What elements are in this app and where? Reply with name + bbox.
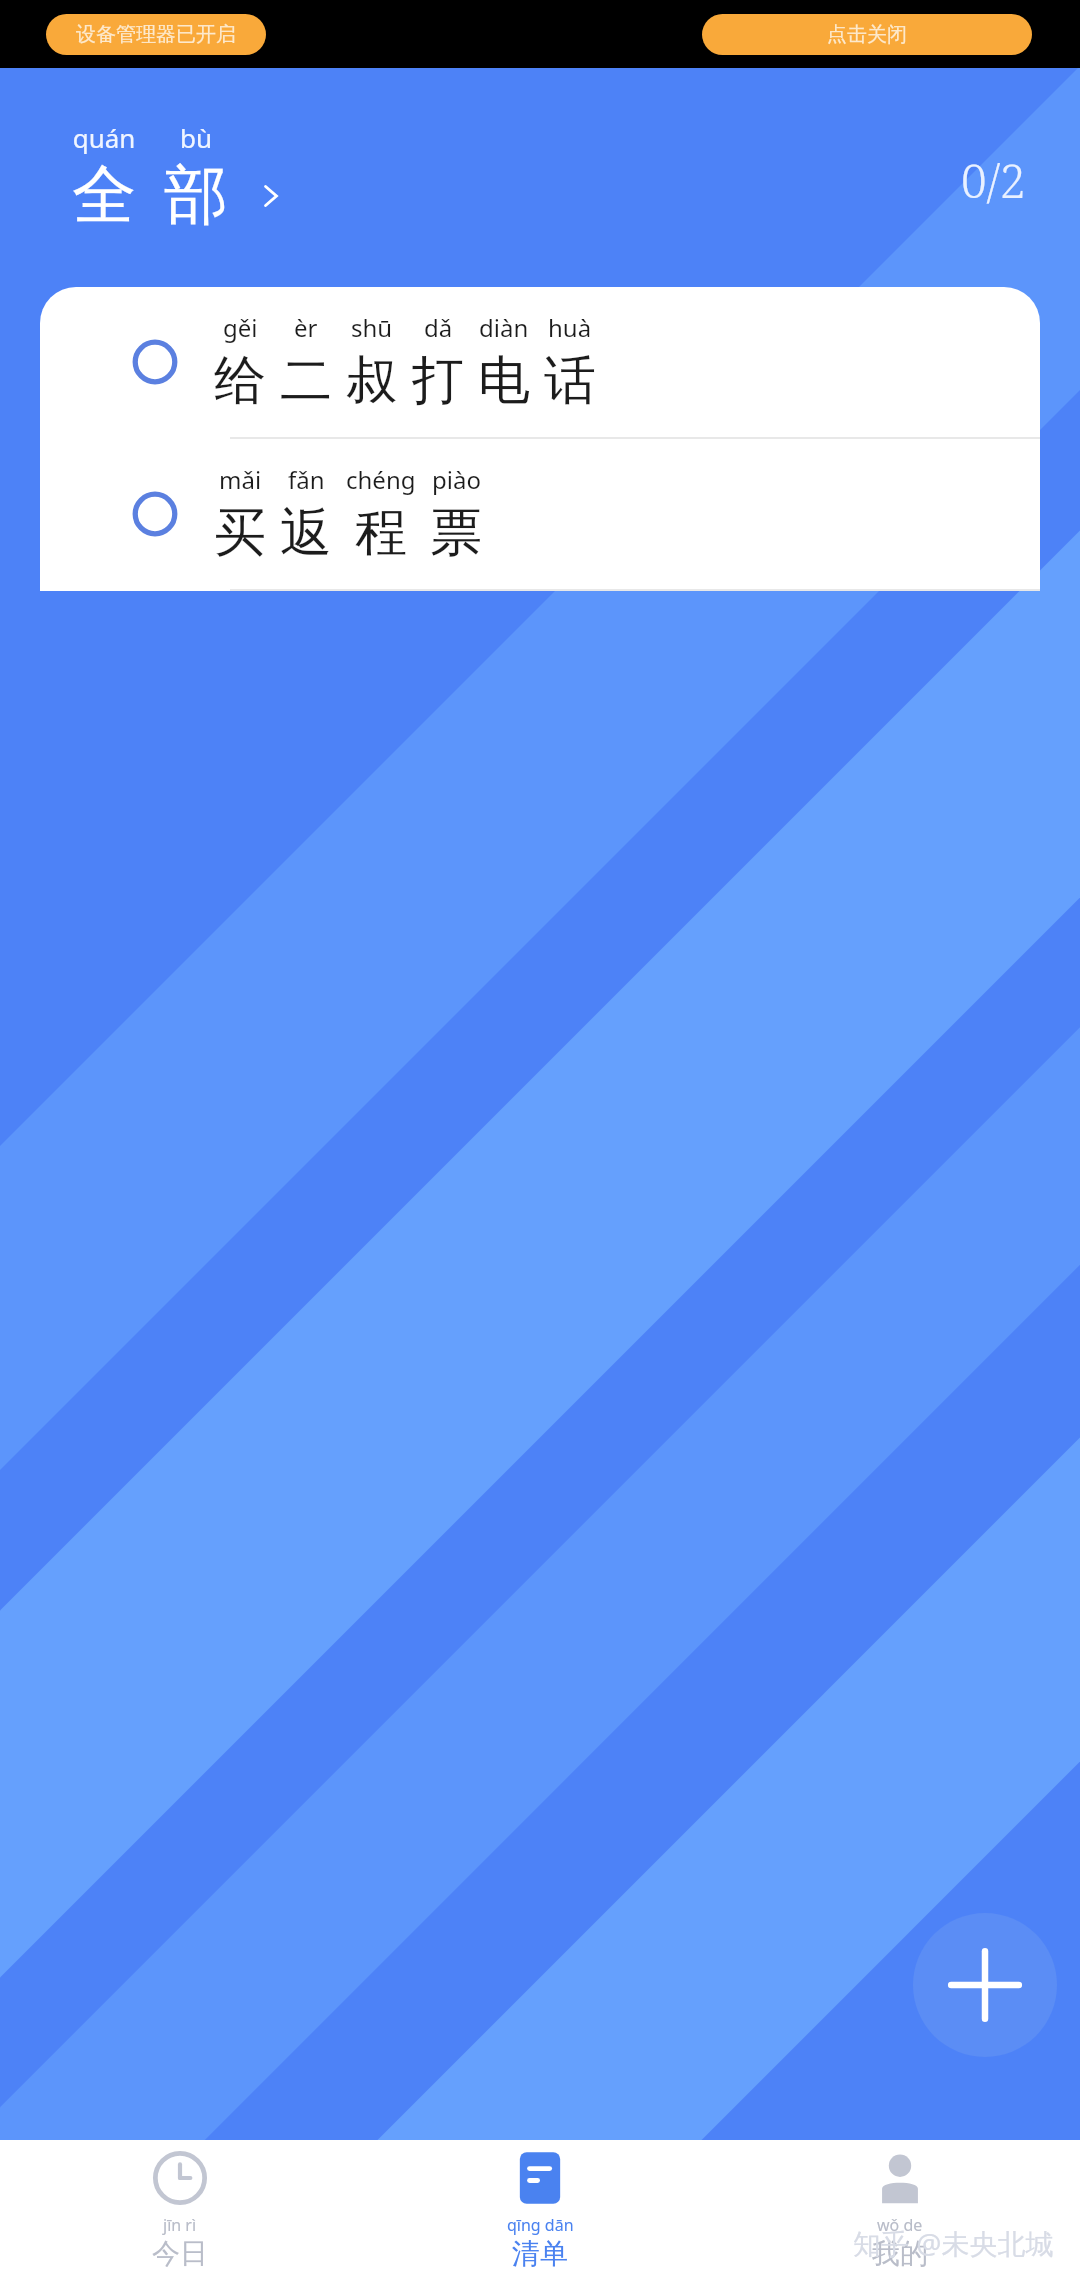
staticText: 全 <box>58 155 150 236</box>
staticText: 返 <box>280 500 332 566</box>
staticText: qīng dān <box>507 2214 574 2236</box>
staticText: 打 <box>412 348 464 414</box>
staticText: 给 <box>214 348 266 414</box>
button[interactable]: quán <box>52 116 294 240</box>
staticText: 票 <box>430 500 482 566</box>
button[interactable]: Add task <box>913 1913 1057 2057</box>
staticText: chéng <box>346 463 416 496</box>
staticText: dǎ <box>424 311 453 344</box>
button[interactable]: qīng dān <box>360 2140 720 2280</box>
staticText: 我的 <box>872 2236 928 2271</box>
staticText: piào <box>432 463 481 496</box>
staticText: 二 <box>280 348 332 414</box>
staticText: 设备管理器已开启 <box>76 22 236 47</box>
staticText: 话 <box>544 348 596 414</box>
staticText: huà <box>548 311 592 344</box>
button[interactable]: 设备管理器已开启 <box>46 14 266 55</box>
staticText: 今日 <box>152 2236 208 2271</box>
staticText: 清单 <box>512 2236 568 2271</box>
button[interactable]: jīn rì <box>0 2140 360 2280</box>
staticText: èr <box>294 311 318 344</box>
staticText: jīn rì <box>163 2214 197 2236</box>
staticText: gěi <box>223 311 258 344</box>
staticText: 0/2 <box>961 149 1026 212</box>
button[interactable]: Toggle complete <box>40 287 1040 439</box>
staticText: 电 <box>478 348 530 414</box>
staticText: fǎn <box>288 463 325 496</box>
staticText: diàn <box>479 311 529 344</box>
staticText: mǎi <box>219 463 262 496</box>
staticText: 买 <box>214 500 266 566</box>
staticText: wǒ de <box>877 2214 923 2236</box>
staticText: shū <box>351 311 393 344</box>
staticText: 点击关闭 <box>827 22 907 47</box>
staticText: quán <box>58 120 150 155</box>
staticText: 程 <box>355 500 407 566</box>
staticText: 部 <box>150 155 242 236</box>
button[interactable]: Toggle complete <box>40 439 1040 591</box>
staticText: 知乎 @未央北城 <box>853 2224 1054 2262</box>
button[interactable]: wǒ de <box>720 2140 1080 2280</box>
staticText: 叔 <box>346 348 398 414</box>
button[interactable]: Toggle complete <box>132 339 178 385</box>
button[interactable]: 点击关闭 <box>702 14 1032 55</box>
button[interactable]: Toggle complete <box>132 491 178 537</box>
staticText: bù <box>150 120 242 155</box>
